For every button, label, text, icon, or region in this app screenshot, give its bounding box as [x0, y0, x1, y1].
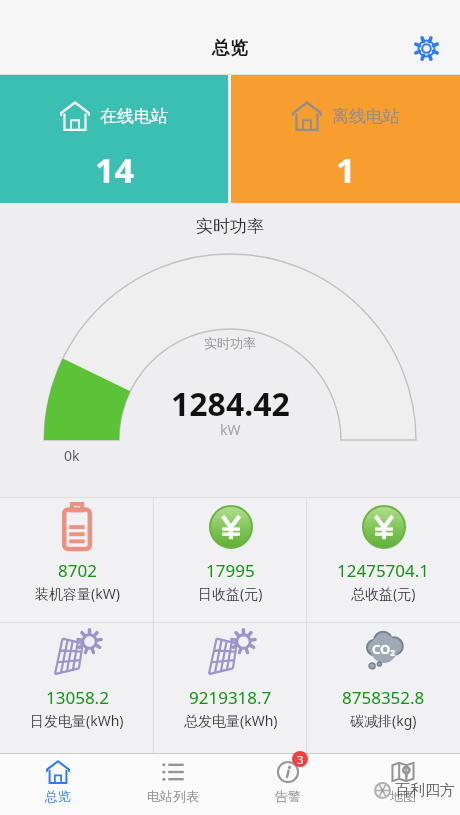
staticText: 0k	[64, 446, 80, 465]
button[interactable]: 9219318.7	[154, 622, 307, 753]
staticText: 13058.2	[46, 686, 109, 709]
button[interactable]	[414, 36, 439, 61]
button[interactable]: CO₂	[307, 622, 460, 753]
staticText: 离线电站	[332, 106, 400, 127]
staticText: 总览	[45, 788, 71, 804]
staticText: 3	[297, 752, 304, 767]
staticText: 总收益(元)	[351, 584, 416, 603]
staticText: 碳减排(kg)	[350, 711, 417, 730]
staticText: 电站列表	[147, 788, 199, 804]
staticText: 总览	[212, 37, 248, 60]
button[interactable]: 地图	[345, 753, 460, 815]
staticText: 17995	[206, 559, 255, 582]
staticText: 14	[95, 147, 134, 193]
staticText: 百利四方	[395, 781, 455, 800]
staticText: 地图	[390, 788, 416, 804]
staticText: 12475704.1	[337, 559, 430, 582]
staticText: 日发电量(kWh)	[30, 711, 124, 730]
button[interactable]: 8702	[0, 497, 154, 622]
button[interactable]: 在线电站	[0, 75, 228, 203]
staticText: 装机容量(kW)	[35, 584, 120, 603]
staticText: 1284.42	[171, 382, 290, 426]
staticText: 9219318.7	[189, 686, 272, 709]
button[interactable]: 13058.2	[0, 622, 154, 753]
button[interactable]: 离线电站	[231, 75, 460, 203]
staticText: 8702	[58, 559, 97, 582]
staticText: 实时功率	[204, 335, 256, 351]
staticText: 告警	[275, 788, 301, 804]
staticText: 1	[336, 147, 356, 193]
staticText: 在线电站	[100, 106, 168, 127]
staticText: CO₂	[372, 640, 396, 658]
button[interactable]: 3	[230, 753, 345, 815]
button[interactable]: 17995	[154, 497, 307, 622]
button[interactable]: 电站列表	[115, 753, 230, 815]
staticText: 8758352.8	[342, 686, 425, 709]
staticText: 日收益(元)	[198, 584, 263, 603]
staticText: 实时功率	[196, 216, 264, 237]
button[interactable]: 总览	[0, 753, 115, 815]
button[interactable]: 12475704.1	[307, 497, 460, 622]
staticText: 总发电量(kWh)	[184, 711, 278, 730]
staticText: kW	[220, 420, 241, 439]
